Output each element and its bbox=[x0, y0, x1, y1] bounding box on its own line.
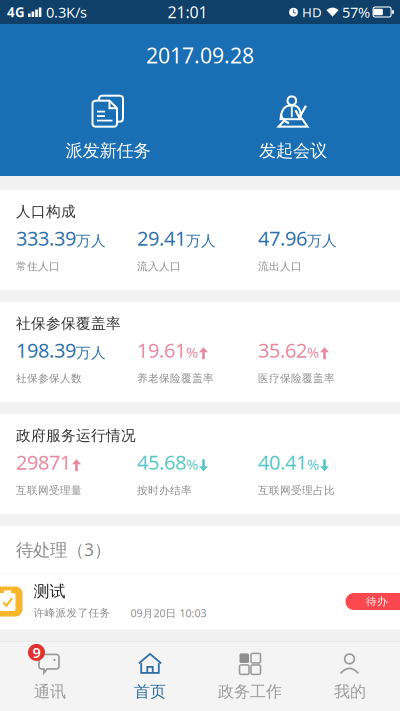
staticText: 常住人口 bbox=[16, 260, 60, 273]
button[interactable]: 9 bbox=[0, 641, 100, 711]
staticText: 09月20日 10:03 bbox=[130, 606, 206, 620]
staticText: HD bbox=[302, 3, 322, 21]
staticText: 35.62 bbox=[258, 337, 307, 363]
staticText: 医疗保险覆盖率 bbox=[258, 372, 335, 385]
staticText: 9 bbox=[32, 643, 40, 662]
staticText: 政务工作 bbox=[218, 682, 282, 702]
button[interactable]: 测试 bbox=[0, 573, 400, 629]
staticText: 万人 bbox=[307, 232, 337, 250]
staticText: 21:01 bbox=[167, 1, 207, 23]
staticText: 198.39 bbox=[16, 337, 76, 363]
staticText: 29871 bbox=[16, 449, 71, 475]
staticText: 互联网受理量 bbox=[16, 484, 82, 497]
staticText: 养老保险覆盖率 bbox=[137, 372, 214, 385]
button[interactable]: 首页 bbox=[100, 641, 200, 711]
staticText: 流出人口 bbox=[258, 260, 302, 273]
staticText: 发起会议 bbox=[259, 140, 327, 161]
staticText: 首页 bbox=[134, 682, 166, 702]
staticText: 许峰派发了任务 bbox=[33, 606, 110, 619]
button[interactable]: 政务工作 bbox=[200, 641, 300, 711]
staticText: 45.68 bbox=[137, 449, 186, 475]
staticText: 政府服务运行情况 bbox=[16, 426, 136, 444]
staticText: 万人 bbox=[76, 344, 106, 362]
staticText: 派发新任务 bbox=[65, 140, 150, 161]
staticText: 19.61 bbox=[137, 337, 186, 363]
staticText: 按时办结率 bbox=[137, 484, 192, 497]
staticText: 人口构成 bbox=[16, 202, 76, 220]
staticText: 测试 bbox=[33, 582, 65, 601]
staticText: 57% bbox=[342, 2, 370, 22]
button[interactable]: 我的 bbox=[300, 641, 400, 711]
staticText: 待处理（3） bbox=[16, 538, 111, 561]
staticText: 0.3K/s bbox=[46, 2, 87, 22]
staticText: 47.96 bbox=[258, 225, 307, 251]
staticText: % bbox=[186, 454, 198, 474]
staticText: 万人 bbox=[186, 232, 216, 250]
staticText: 万人 bbox=[76, 232, 106, 250]
staticText: 待办 bbox=[366, 595, 388, 608]
staticText: % bbox=[186, 342, 198, 362]
staticText: 4G bbox=[7, 3, 25, 21]
staticText: 40.41 bbox=[258, 449, 307, 475]
staticText: 2017.09.28 bbox=[146, 41, 254, 69]
staticText: 社保参保覆盖率 bbox=[16, 314, 121, 332]
staticText: 333.39 bbox=[16, 225, 76, 251]
staticText: 29.41 bbox=[137, 225, 186, 251]
button[interactable]: 派发新任务 bbox=[43, 96, 173, 160]
staticText: 流入人口 bbox=[137, 260, 181, 273]
staticText: % bbox=[307, 454, 319, 474]
staticText: 社保参保人数 bbox=[16, 372, 82, 385]
staticText: % bbox=[307, 342, 319, 362]
staticText: 我的 bbox=[334, 682, 366, 702]
staticText: 互联网受理占比 bbox=[258, 484, 335, 497]
staticText: 通讯 bbox=[34, 682, 66, 702]
button[interactable]: 发起会议 bbox=[228, 96, 358, 160]
